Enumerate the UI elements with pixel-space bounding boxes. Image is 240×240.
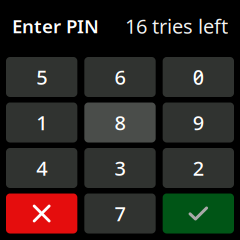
button[interactable]: 6 bbox=[84, 57, 156, 97]
button[interactable]: 2 bbox=[163, 148, 234, 188]
button[interactable]: Confirm bbox=[163, 193, 234, 233]
button[interactable]: 3 bbox=[84, 148, 156, 188]
staticText: 8 bbox=[114, 109, 125, 136]
button[interactable]: 4 bbox=[6, 148, 77, 188]
staticText: Enter PIN bbox=[12, 14, 99, 38]
button[interactable]: 9 bbox=[163, 102, 234, 142]
button[interactable]: 1 bbox=[6, 102, 77, 142]
button[interactable]: Cancel bbox=[6, 193, 77, 233]
staticText: 5 bbox=[36, 64, 47, 90]
button[interactable]: 0 bbox=[163, 57, 234, 97]
staticText: 9 bbox=[193, 109, 204, 136]
button[interactable]: 5 bbox=[6, 57, 77, 97]
button[interactable]: 8 bbox=[84, 102, 156, 142]
staticText: 16 tries left bbox=[125, 13, 228, 39]
staticText: 1 bbox=[36, 109, 47, 136]
staticText: 3 bbox=[114, 155, 125, 181]
staticText: 0 bbox=[193, 64, 204, 90]
staticText: 7 bbox=[114, 200, 125, 227]
staticText: 4 bbox=[36, 155, 47, 181]
button[interactable]: 7 bbox=[84, 193, 156, 233]
staticText: 2 bbox=[193, 155, 204, 181]
staticText: 6 bbox=[114, 64, 125, 90]
